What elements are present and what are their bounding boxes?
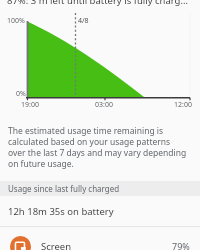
staticText: Usage since last fully charged <box>8 183 120 194</box>
staticText: 12h 18m 35s on battery <box>8 205 114 218</box>
button[interactable]: Screen <box>0 229 200 250</box>
staticText: The estimated usage time remaining is ca… <box>8 125 189 169</box>
staticText: 0% <box>16 89 26 99</box>
staticText: 19:00 <box>21 100 39 110</box>
staticText: 87%: 3 m left until battery is fully cha… <box>7 0 188 7</box>
staticText: 79% <box>172 240 190 250</box>
staticText: 12:00 <box>174 100 192 110</box>
staticText: 100% <box>7 16 25 26</box>
staticText: 4/8 <box>78 16 89 26</box>
staticText: Screen <box>41 240 72 250</box>
staticText: 03:00 <box>95 100 113 110</box>
